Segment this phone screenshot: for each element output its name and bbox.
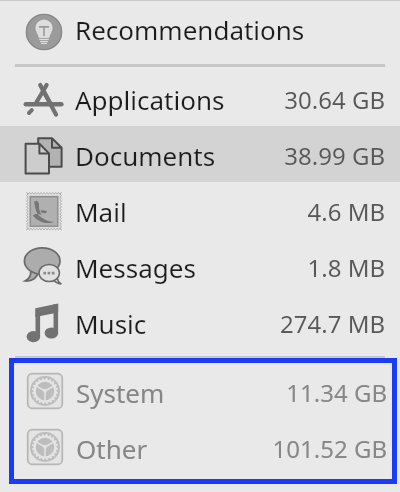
staticText: Mail	[75, 194, 127, 229]
button[interactable]: Recommendations	[0, 0, 400, 63]
staticText: 30.64 GB	[284, 83, 385, 116]
button[interactable]: Documents	[0, 126, 400, 182]
staticText: Messages	[75, 250, 196, 285]
staticText: 1.8 MB	[307, 251, 385, 284]
button[interactable]: Messages	[0, 238, 400, 294]
staticText: Other	[76, 431, 148, 466]
staticText: Music	[75, 306, 147, 341]
staticText: 101.52 GB	[272, 432, 387, 465]
staticText: Recommendations	[75, 12, 305, 47]
staticText: 11.34 GB	[286, 376, 387, 409]
button[interactable]: Applications	[0, 70, 400, 126]
staticText: 38.99 GB	[284, 139, 385, 172]
button[interactable]: Music	[0, 294, 400, 350]
staticText: 4.6 MB	[307, 195, 385, 228]
button[interactable]: System	[14, 363, 392, 419]
staticText: Documents	[75, 138, 216, 173]
staticText: 274.7 MB	[280, 307, 385, 340]
staticText: Applications	[75, 82, 225, 117]
button[interactable]: Other	[14, 419, 392, 475]
staticText: System	[76, 375, 165, 410]
button[interactable]: Mail	[0, 182, 400, 238]
